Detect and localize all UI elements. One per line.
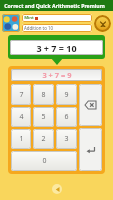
button[interactable]: 3 [56,129,77,149]
button[interactable]: 7 [11,84,31,105]
staticText: Addition to 10 [24,25,53,31]
button[interactable]: 1 [11,129,31,149]
staticText: 0 [42,156,47,166]
staticText: 7 [19,90,24,100]
button[interactable]: 8 [33,84,54,105]
staticText: 1 [19,134,24,144]
button[interactable]: 5 [33,107,54,127]
staticText: 6 [64,112,69,122]
button[interactable]: 4 [11,107,31,127]
button[interactable]: 9 [56,84,77,105]
staticText: 8 [41,90,46,100]
button[interactable]: 3 + 7 = 10 [8,35,105,59]
button[interactable]: 2 [33,129,54,149]
button[interactable]: Settings [94,15,111,32]
button[interactable]: Backspace [79,84,102,126]
button[interactable]: Mint [22,14,92,22]
button[interactable]: 0 [11,151,77,171]
staticText: 3 + 7 = 10 [36,42,77,54]
button[interactable]: Profile [2,14,20,32]
staticText: 5 [41,112,46,122]
button[interactable]: 6 [56,107,77,127]
button[interactable]: Addition to 10 [22,24,92,32]
staticText: Correct and Quick Arithmetic Premium [4,2,105,9]
staticText: 3 [64,134,69,144]
staticText: 3 + 7 = 9 [42,70,72,80]
staticText: 4 [19,112,24,122]
staticText: 2 [41,134,46,144]
button[interactable]: Enter [79,128,102,171]
staticText: Mint [24,15,34,21]
button[interactable]: Back [52,184,62,194]
staticText: 9 [64,90,69,100]
